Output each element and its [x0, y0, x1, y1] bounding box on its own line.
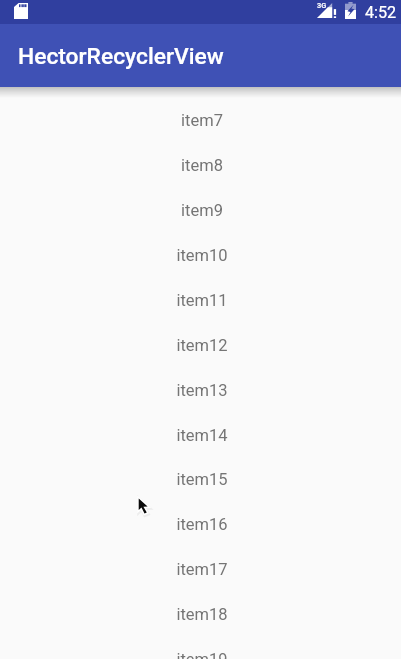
button[interactable]: item16 [0, 501, 401, 546]
button[interactable]: item19 [0, 636, 401, 659]
button[interactable]: item7 [0, 97, 401, 142]
staticText: 3G [317, 1, 327, 10]
other: Mobile signal, no service [320, 2, 338, 19]
staticText: item12 [176, 336, 228, 355]
staticText: item11 [176, 291, 228, 310]
other: Battery charging [345, 2, 356, 19]
staticText: item7 [181, 111, 223, 130]
button[interactable]: item15 [0, 456, 401, 501]
staticText: item13 [176, 381, 228, 400]
other: SD card [14, 3, 28, 19]
staticText: item9 [181, 201, 223, 220]
button[interactable]: item8 [0, 142, 401, 187]
button[interactable]: item17 [0, 546, 401, 591]
staticText: item17 [176, 560, 228, 579]
button[interactable]: item14 [0, 412, 401, 457]
staticText: item19 [176, 650, 228, 659]
staticText: item8 [181, 156, 223, 175]
staticText: item15 [176, 470, 228, 489]
button[interactable]: item18 [0, 591, 401, 636]
button[interactable]: item12 [0, 322, 401, 367]
button[interactable]: HectorRecyclerView [0, 24, 401, 87]
staticText: item14 [176, 426, 228, 445]
button[interactable]: item11 [0, 277, 401, 322]
button[interactable]: item10 [0, 232, 401, 277]
staticText: item18 [176, 605, 228, 624]
staticText: HectorRecyclerView [18, 43, 224, 70]
staticText: 4:52 [365, 3, 397, 22]
button[interactable]: item13 [0, 367, 401, 412]
staticText: item10 [176, 246, 228, 265]
staticText: item16 [176, 515, 228, 534]
button[interactable]: item9 [0, 187, 401, 232]
